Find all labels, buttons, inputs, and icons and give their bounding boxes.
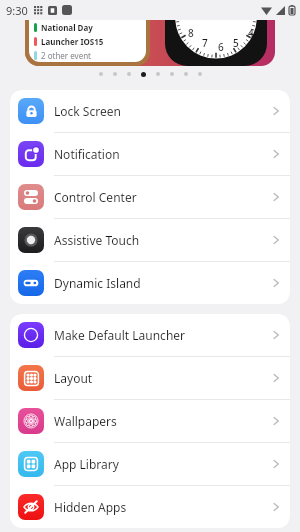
button[interactable]: Wallpapers <box>10 400 290 442</box>
staticText: Dynamic Island <box>54 275 141 291</box>
staticText: App Library <box>54 456 119 472</box>
button[interactable]: Assistive Touch <box>10 219 290 261</box>
staticText: 2 other event <box>41 50 91 61</box>
staticText: Launcher IOS15 <box>41 36 104 47</box>
button[interactable]: Lock Screen <box>10 90 290 132</box>
button[interactable]: Hidden Apps <box>10 486 290 528</box>
staticText: 7 <box>202 36 208 50</box>
staticText: Hidden Apps <box>54 499 127 515</box>
staticText: Assistive Touch <box>54 232 140 248</box>
staticText: Make Default Launcher <box>54 327 186 343</box>
button[interactable]: App Library <box>10 443 290 485</box>
staticText: 5 <box>233 36 239 50</box>
staticText: Wallpapers <box>54 413 117 429</box>
staticText: 9:30 <box>6 3 28 18</box>
button[interactable]: Notification <box>10 133 290 175</box>
staticText: National Day <box>41 22 93 33</box>
button[interactable]: Layout <box>10 357 290 399</box>
staticText: Control Center <box>54 189 137 205</box>
staticText: 6 <box>218 40 224 54</box>
staticText: Lock Screen <box>54 103 121 119</box>
button[interactable]: Dynamic Island <box>10 262 290 304</box>
staticText: 4 <box>248 26 254 40</box>
button[interactable]: Make Default Launcher <box>10 314 290 356</box>
button[interactable]: Control Center <box>10 176 290 218</box>
staticText: Notification <box>54 146 120 162</box>
staticText: 8 <box>188 26 194 40</box>
staticText: Layout <box>54 370 93 386</box>
